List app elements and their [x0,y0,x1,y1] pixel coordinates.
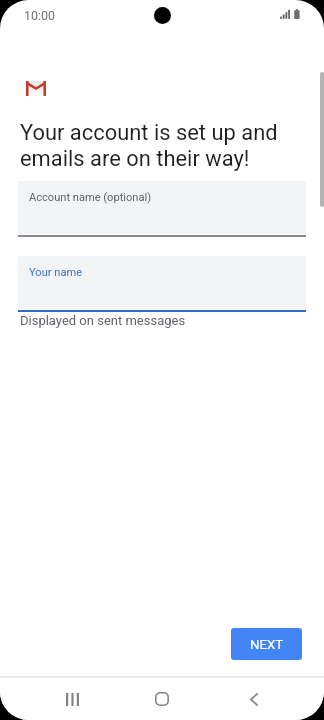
staticText: 10:00 [24,8,56,23]
staticText: Your account is set up and emails are on… [20,120,290,171]
staticText: Displayed on sent messages [20,313,186,328]
button[interactable]: Account name (optional) [18,181,306,234]
button[interactable]: NEXT [231,628,302,660]
button[interactable]: Back [234,679,274,719]
button[interactable]: Recent apps [52,679,92,719]
staticText: Account name (optional) [29,191,152,204]
staticText: NEXT [250,637,284,652]
button[interactable]: Home [142,679,182,719]
button[interactable]: Your name [18,256,306,309]
staticText: Your name [29,266,83,279]
